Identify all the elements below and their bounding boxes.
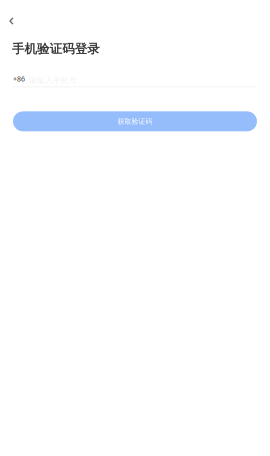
button[interactable]: 请输入手机号: [0, 57, 270, 85]
button[interactable]: Back: [0, 10, 23, 32]
staticText: 手机验证码登录: [12, 41, 99, 57]
button[interactable]: 获取验证码: [13, 111, 257, 131]
staticText: 请输入手机号: [29, 76, 77, 85]
staticText: +86: [13, 74, 25, 84]
staticText: 获取验证码: [117, 117, 152, 126]
